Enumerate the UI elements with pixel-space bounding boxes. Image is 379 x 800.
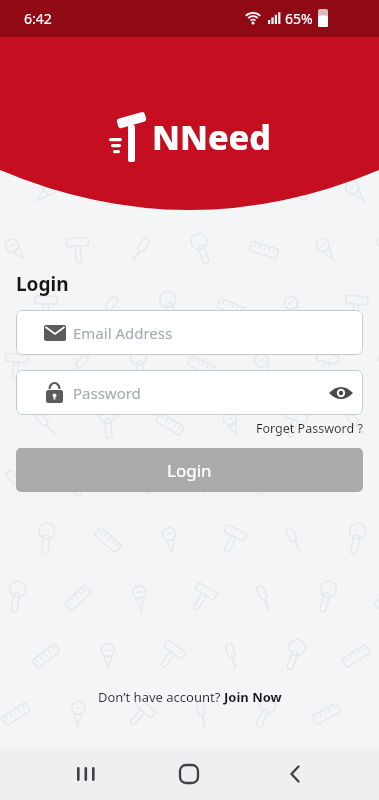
- staticText: Email Address: [73, 323, 173, 343]
- staticText: Password: [73, 383, 141, 403]
- button[interactable]: [177, 762, 201, 786]
- staticText: Login: [16, 271, 69, 297]
- button[interactable]: [74, 762, 98, 786]
- button[interactable]: Email Address: [16, 310, 363, 355]
- staticText: NNeed: [152, 114, 271, 160]
- button[interactable]: Login: [16, 448, 363, 492]
- staticText: Don’t have account?: [98, 688, 224, 706]
- button[interactable]: Join Now: [224, 688, 282, 706]
- button[interactable]: [283, 762, 307, 786]
- button[interactable]: Forget Password ?: [256, 420, 363, 437]
- button[interactable]: Password: [16, 370, 363, 415]
- button[interactable]: [329, 385, 353, 401]
- staticText: 6:42: [24, 9, 52, 28]
- staticText: 65%: [285, 9, 313, 28]
- staticText: Login: [167, 459, 212, 482]
